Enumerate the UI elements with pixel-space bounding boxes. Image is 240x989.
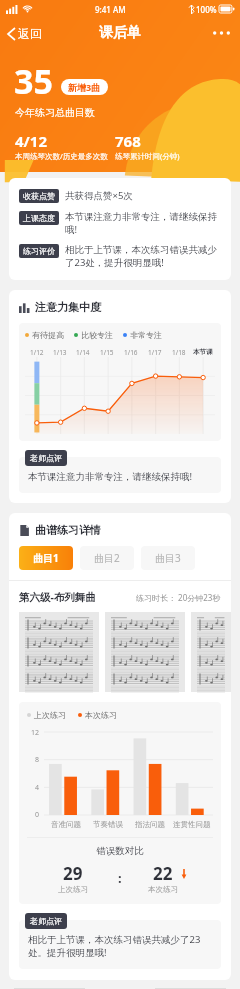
staticText: 29 [63,862,83,885]
staticText: 12 [31,728,40,738]
button[interactable]: More options [203,21,240,45]
button[interactable]: Sheet music page [191,612,231,692]
staticText: 比较专注 [81,330,113,340]
staticText: 共获得点赞×5次 [65,189,133,202]
staticText: 指法问题 [135,820,165,829]
staticText: 课后单 [99,24,141,42]
button[interactable]: Sheet music page [19,612,99,692]
staticText: 4/12 [15,131,47,151]
staticText: 非常专注 [130,330,162,340]
staticText: 收获点赞 [23,191,55,201]
staticText: 35 [14,58,53,104]
button[interactable]: 曲目1 [19,546,73,570]
staticText: 老师点评 [30,916,62,926]
staticText: 上课态度 [23,213,55,223]
staticText: 上次练习 [58,885,88,894]
staticText: 连贯性问题 [173,820,211,829]
staticText: 有待提高 [32,330,64,340]
staticText: 1/18 [172,348,186,357]
staticText: 相比于上节课，本次练习错误共减少了23处。提升很明显哦! [28,933,212,959]
staticText: 8 [35,755,40,765]
staticText: 本次练习 [85,710,117,720]
staticText: 0 [35,810,40,820]
staticText: 练习评价 [23,246,55,256]
staticText: 错误数对比 [27,845,213,857]
staticText: 本节课 [193,348,213,356]
staticText: 22 [153,862,173,885]
staticText: 1/12 [30,348,44,357]
button[interactable]: 曲目3 [141,546,195,570]
staticText: 4 [35,783,40,793]
staticText: 新增3曲 [68,81,101,93]
staticText: 返回 [18,26,42,41]
staticText: 1/15 [100,348,114,357]
staticText: 曲目3 [155,551,181,565]
staticText: 注意力集中度 [35,300,101,314]
staticText: 本周练琴次数/历史最多次数 [15,151,108,161]
button[interactable]: 返回 [0,22,50,45]
button[interactable]: 曲目2 [80,546,134,570]
staticText: 今年练习总曲目数 [15,106,95,119]
button[interactable]: Sheet music page [105,612,185,692]
staticText: 曲目1 [33,551,59,565]
staticText: 本节课注意力非常专注，请继续保持哦! [65,211,221,236]
staticText: 节奏错误 [93,820,123,829]
staticText: 1/16 [124,348,138,357]
staticText: 768 [115,131,141,151]
staticText: 曲目2 [94,551,120,565]
staticText: 1/17 [148,348,162,357]
staticText: 本次练习 [148,885,178,894]
staticText: 本节课注意力非常专注，请继续保持哦! [28,470,193,483]
staticText: 1/14 [76,348,90,357]
staticText: 9:41 AM [95,4,126,15]
staticText: 相比于上节课，本次练习错误共减少了23处，提升很明显哦! [65,244,221,269]
staticText: 老师点评 [30,453,62,463]
staticText: 练习时长： 20分钟23秒 [136,592,221,603]
staticText: 曲谱练习详情 [35,523,101,537]
staticText: 练琴累计时间(分钟) [115,151,180,161]
staticText: 音准问题 [51,820,81,829]
staticText: 上次练习 [34,710,66,720]
staticText: : [118,869,122,887]
staticText: 1/13 [53,348,67,357]
staticText: 第六级-布列舞曲 [19,590,96,604]
staticText: 100% [196,4,217,15]
